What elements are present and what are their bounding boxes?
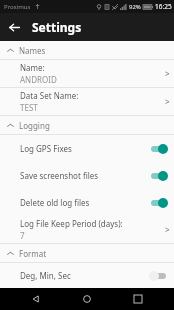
staticText: Settings: [32, 19, 82, 35]
button[interactable]: Back: [26, 289, 46, 309]
button[interactable]: Name:: [0, 60, 174, 87]
button[interactable]: Delete old log files: [0, 189, 174, 216]
button[interactable]: Recents: [128, 289, 148, 309]
staticText: Data Set Name:: [20, 90, 79, 101]
staticText: Deg, Min, Sec: [20, 270, 149, 281]
staticText: Format: [19, 248, 47, 259]
staticText: Delete old log files: [20, 197, 149, 208]
button[interactable]: Back: [3, 16, 25, 38]
button[interactable]: Logging: [0, 116, 174, 134]
staticText: TEST: [20, 102, 38, 113]
button[interactable]: Deg, Min, Sec: [0, 263, 174, 288]
staticText: Save screenshot files: [20, 170, 149, 181]
staticText: >: [165, 96, 170, 107]
button[interactable]: Log GPS Fixes: [0, 135, 174, 162]
staticText: Log GPS Fixes: [20, 143, 149, 154]
button[interactable]: Data Set Name:: [0, 88, 174, 115]
button[interactable]: Save screenshot files: [0, 162, 174, 189]
staticText: 92%: [129, 3, 141, 11]
staticText: Name:: [20, 62, 45, 73]
staticText: Logging: [19, 120, 50, 131]
staticText: >: [165, 68, 170, 79]
button[interactable]: Log File Keep Period (days):: [0, 216, 174, 243]
staticText: Log File Keep Period (days):: [20, 218, 123, 229]
button[interactable]: Format: [0, 244, 174, 262]
button[interactable]: Home: [77, 289, 97, 309]
staticText: Proximus: [4, 3, 31, 11]
staticText: 7: [20, 230, 25, 241]
staticText: 16:25: [155, 2, 172, 11]
button[interactable]: Names: [0, 41, 174, 59]
staticText: >: [165, 224, 170, 235]
staticText: ANDROID: [20, 74, 57, 85]
staticText: Names: [19, 45, 46, 56]
